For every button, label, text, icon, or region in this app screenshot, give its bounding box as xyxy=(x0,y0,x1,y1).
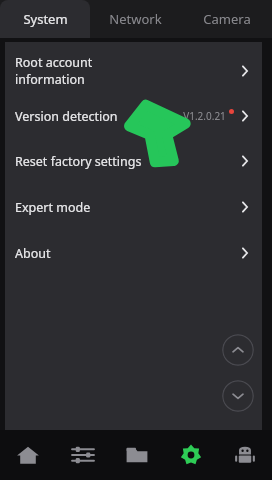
button[interactable]: Version detection xyxy=(5,94,262,138)
staticText: Reset factory settings xyxy=(15,153,142,170)
staticText: System xyxy=(23,10,68,28)
button[interactable]: Settings sliders xyxy=(55,430,110,480)
button[interactable]: Root account information xyxy=(5,48,262,94)
button[interactable]: Expert mode xyxy=(5,184,262,230)
staticText: Version detection xyxy=(15,108,118,125)
staticText: Camera xyxy=(203,10,251,28)
staticText: Root account information xyxy=(15,54,93,88)
button[interactable]: Scroll down xyxy=(222,380,254,412)
staticText: Network xyxy=(109,10,162,28)
button[interactable]: Reset factory settings xyxy=(5,138,262,184)
button[interactable]: Scroll up xyxy=(222,334,254,366)
button[interactable]: Settings xyxy=(164,430,218,480)
staticText: Expert mode xyxy=(15,199,91,216)
button[interactable]: Camera xyxy=(181,0,272,38)
button[interactable]: Network xyxy=(90,0,181,38)
button[interactable]: Home xyxy=(0,430,55,480)
staticText: V1.2.0.21 xyxy=(183,109,226,123)
button[interactable]: System xyxy=(0,0,90,38)
staticText: About xyxy=(15,245,51,262)
button[interactable]: Files xyxy=(110,430,164,480)
button[interactable]: About xyxy=(5,230,262,276)
button[interactable]: Device xyxy=(218,430,272,480)
